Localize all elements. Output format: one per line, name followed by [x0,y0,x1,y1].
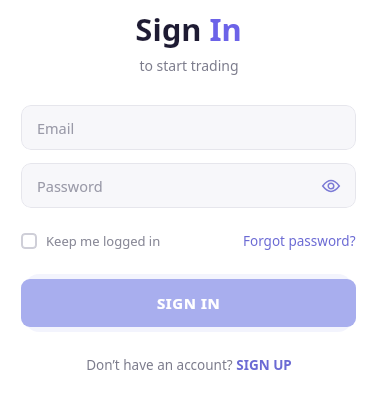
button[interactable]: Keep me logged in [21,230,161,252]
staticText: SIGN IN [157,293,221,313]
button[interactable]: SIGN IN [21,279,356,327]
button[interactable]: Show password [318,173,344,199]
button[interactable]: Forgot password? [243,230,356,252]
staticText: Email [37,118,75,138]
staticText: Don’t have an account? SIGN UP [86,356,292,374]
staticText: Password [37,176,103,196]
staticText: to start trading [139,56,239,75]
button[interactable]: Password [21,163,356,208]
button[interactable]: Email [21,105,356,150]
staticText: Forgot password? [243,232,356,250]
button[interactable]: Don’t have an account? SIGN UP [82,354,296,376]
staticText: Keep me logged in [46,232,161,250]
staticText: Sign In [135,8,242,50]
